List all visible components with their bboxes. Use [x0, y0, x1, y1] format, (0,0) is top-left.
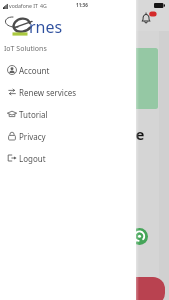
button[interactable]: Renew services	[0, 81, 136, 103]
staticText: Home	[100, 124, 145, 144]
staticText: Logout	[19, 153, 46, 164]
staticText: Tutorial	[19, 109, 48, 120]
button[interactable]: Privacy	[0, 125, 136, 147]
button[interactable]	[96, 48, 158, 109]
staticText: IoT Solutions	[4, 44, 47, 54]
button[interactable]: Account	[0, 59, 136, 81]
button[interactable]	[118, 277, 165, 300]
button[interactable]: Notifications	[141, 11, 157, 25]
staticText: vodafone IT	[9, 2, 38, 9]
button[interactable]: Logout	[0, 147, 136, 169]
staticText: Account	[19, 65, 50, 76]
staticText: 4G	[40, 2, 47, 9]
staticText: rnes	[29, 16, 63, 38]
button[interactable]: Tutorial	[0, 103, 136, 125]
button[interactable]: WhatsApp	[131, 228, 148, 245]
staticText: 11:36	[76, 2, 88, 8]
staticText: Privacy	[19, 131, 46, 142]
staticText: Renew services	[19, 87, 77, 98]
